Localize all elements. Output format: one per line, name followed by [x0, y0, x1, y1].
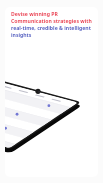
staticText: Communication strategies with — [11, 17, 92, 24]
staticText: real-time, credible & intelligent — [11, 24, 91, 31]
staticText: Devise winning PR — [11, 10, 58, 17]
staticText: insights — [11, 31, 32, 38]
